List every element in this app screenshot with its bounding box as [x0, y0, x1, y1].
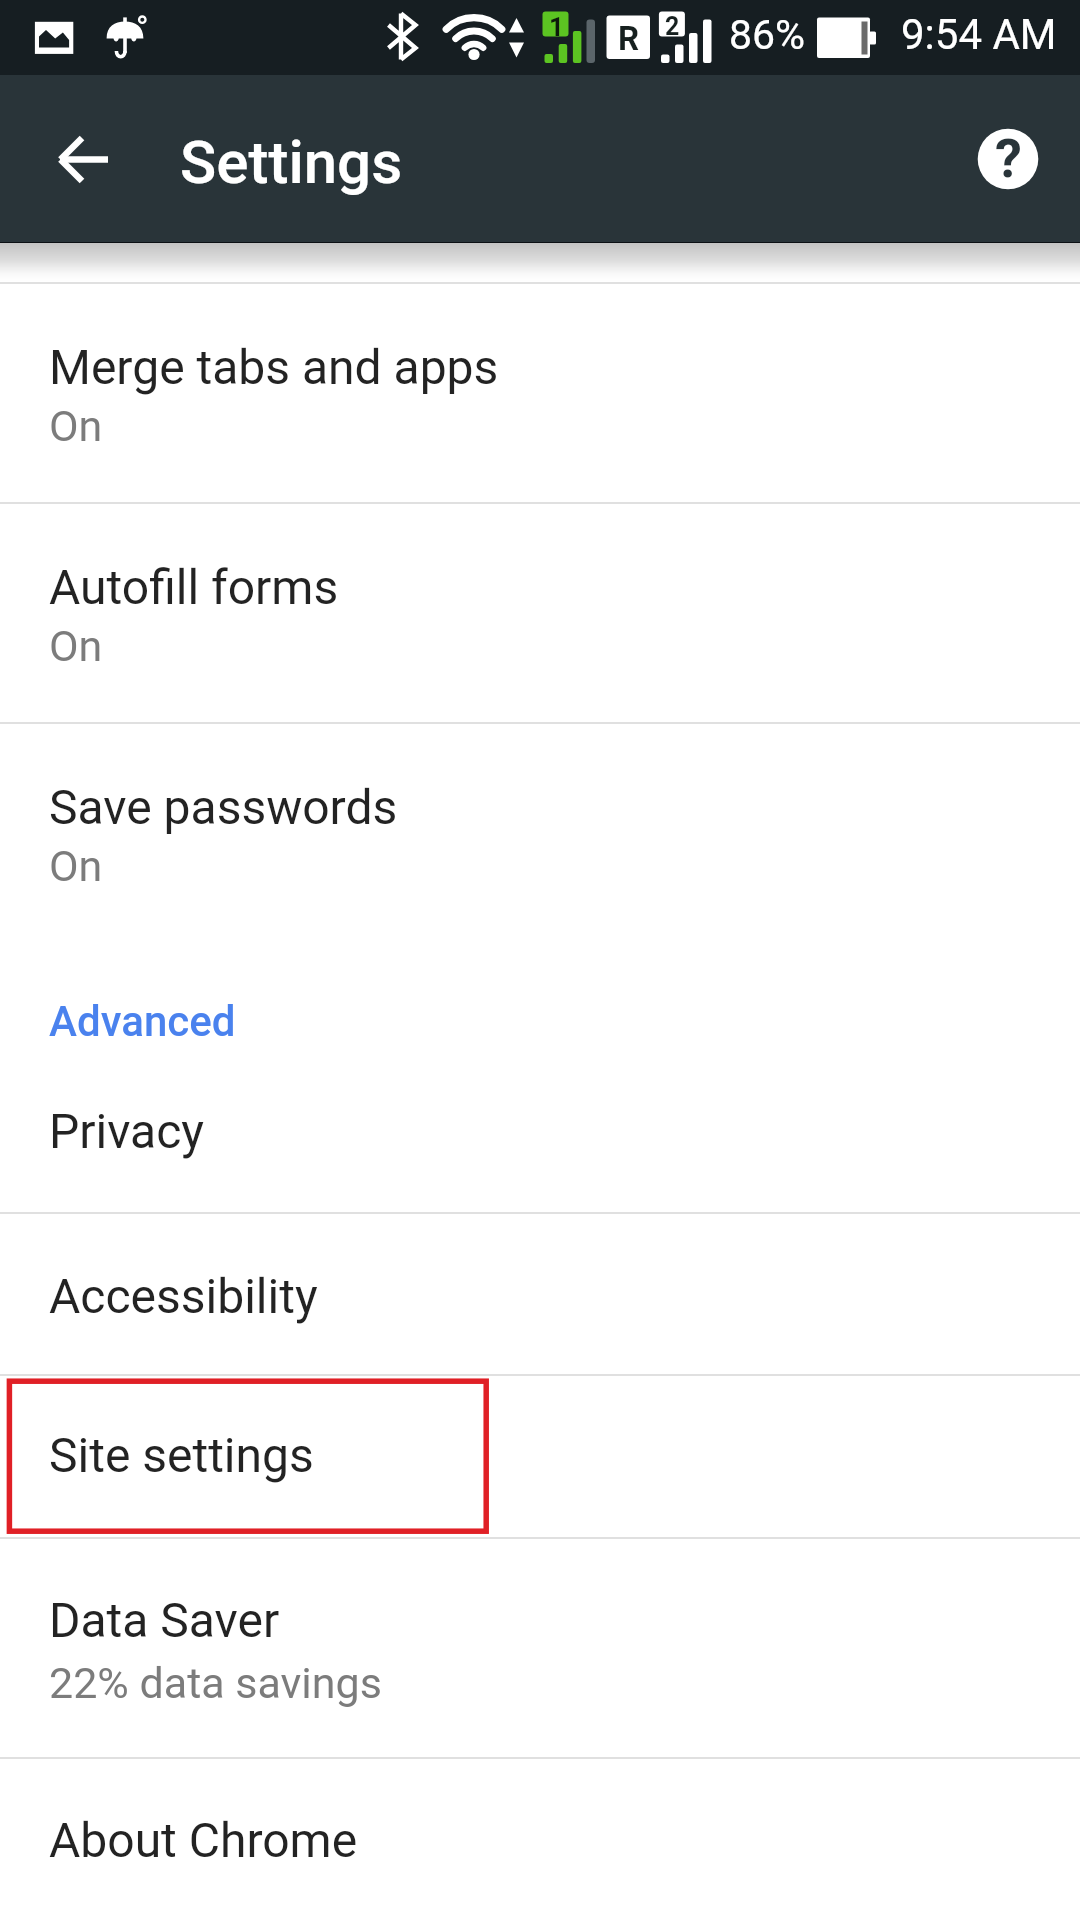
button[interactable]: Autofill forms	[0, 504, 1080, 722]
button[interactable]: About Chrome	[0, 1759, 1080, 1920]
button[interactable]: Privacy	[0, 1071, 1080, 1212]
staticText: Autofill forms	[49, 559, 339, 615]
staticText: ?	[995, 127, 1022, 190]
staticText: Site settings	[49, 1427, 314, 1483]
staticText: R	[618, 19, 640, 58]
button[interactable]: Accessibility	[0, 1214, 1080, 1374]
staticText: On	[49, 841, 103, 891]
staticText: 2	[665, 12, 680, 37]
button[interactable]: Back	[37, 111, 131, 205]
staticText: Merge tabs and apps	[49, 339, 499, 395]
button[interactable]: Help	[961, 112, 1055, 206]
button[interactable]: Data Saver	[0, 1539, 1080, 1757]
staticText: On	[49, 401, 103, 451]
staticText: Privacy	[49, 1103, 205, 1159]
staticText: Save passwords	[49, 779, 398, 835]
staticText: 1	[549, 12, 564, 37]
staticText: Data Saver	[49, 1592, 280, 1648]
staticText: 9:54 AM	[901, 10, 1057, 59]
button[interactable]: Merge tabs and apps	[0, 284, 1080, 502]
staticText: On	[49, 621, 103, 671]
staticText: Accessibility	[49, 1268, 318, 1324]
button[interactable]: Site settings	[0, 1376, 1080, 1537]
staticText: 86%	[729, 11, 806, 59]
staticText: Settings	[180, 127, 403, 197]
staticText: 22% data savings	[49, 1658, 382, 1708]
staticText: Advanced	[49, 997, 236, 1046]
staticText: About Chrome	[49, 1812, 358, 1868]
button[interactable]: Save passwords	[0, 724, 1080, 942]
